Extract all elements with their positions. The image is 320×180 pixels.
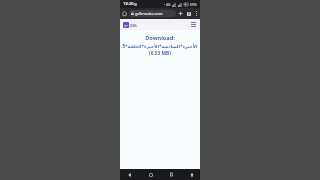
button[interactable]: Switch tabs bbox=[185, 8, 193, 19]
button[interactable]: GDL bbox=[123, 22, 138, 28]
button[interactable]: Menu bbox=[190, 21, 197, 28]
button[interactable]: Home bbox=[120, 8, 129, 19]
staticText: 4G bbox=[166, 2, 171, 7]
button[interactable]: Home bbox=[145, 169, 156, 180]
button[interactable]: More options bbox=[193, 8, 200, 19]
staticText: 18:26 bbox=[123, 1, 134, 7]
button[interactable]: Recent apps bbox=[166, 169, 177, 180]
staticText: 59% bbox=[190, 2, 197, 7]
staticText: gdlmsubs.com bbox=[135, 11, 163, 16]
staticText: (6.53 MB) bbox=[120, 50, 200, 57]
button[interactable]: New tab bbox=[176, 8, 185, 19]
staticText: GDL bbox=[130, 23, 138, 28]
button[interactable]: الأخيرة+السادسة+الأخيرة+الحلقة+5 bbox=[121, 43, 199, 49]
staticText: 8 bbox=[188, 12, 190, 16]
staticText: Download: bbox=[120, 34, 200, 42]
button[interactable]: Back bbox=[124, 169, 135, 180]
button[interactable]: Downloads bbox=[187, 169, 196, 180]
button[interactable]: gdlmsubs.com bbox=[129, 10, 176, 17]
